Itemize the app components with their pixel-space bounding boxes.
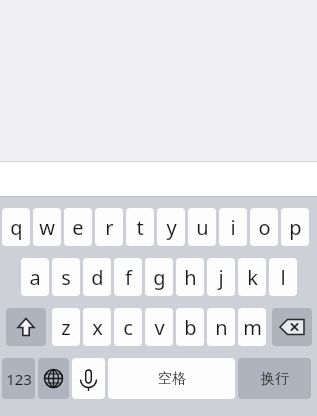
button[interactable]: t — [126, 208, 154, 246]
staticText: z — [61, 314, 71, 341]
staticText: d — [91, 264, 104, 291]
staticText: 换行 — [261, 370, 289, 388]
staticText: s — [61, 264, 71, 291]
button[interactable]: u — [188, 208, 216, 246]
staticText: f — [125, 264, 132, 291]
staticText: u — [196, 214, 209, 241]
button[interactable]: q — [2, 208, 30, 246]
button[interactable]: z — [52, 308, 80, 346]
staticText: k — [247, 264, 258, 291]
button[interactable]: o — [250, 208, 278, 246]
staticText: 123 — [6, 369, 32, 389]
button[interactable]: b — [176, 308, 204, 346]
staticText: y — [166, 214, 177, 241]
staticText: b — [184, 314, 197, 341]
staticText: j — [218, 264, 224, 291]
button[interactable]: Backspace — [272, 308, 312, 346]
button[interactable]: 123 — [2, 358, 35, 399]
button[interactable]: y — [157, 208, 185, 246]
button[interactable]: r — [95, 208, 123, 246]
staticText: t — [136, 214, 144, 241]
staticText: x — [92, 314, 103, 341]
button[interactable]: h — [176, 258, 204, 296]
button[interactable]: d — [83, 258, 111, 296]
button[interactable]: l — [269, 258, 297, 296]
staticText: 空格 — [158, 370, 186, 388]
staticText: a — [29, 264, 41, 291]
staticText: w — [39, 214, 55, 241]
button[interactable]: j — [207, 258, 235, 296]
button[interactable]: 空格 — [108, 358, 235, 399]
staticText: v — [154, 314, 165, 341]
button[interactable]: g — [145, 258, 173, 296]
staticText: o — [258, 214, 271, 241]
staticText: m — [243, 314, 262, 341]
staticText: l — [280, 264, 286, 291]
button[interactable]: x — [83, 308, 111, 346]
staticText: i — [230, 214, 236, 241]
button[interactable]: s — [52, 258, 80, 296]
staticText: r — [105, 214, 114, 241]
staticText: h — [184, 264, 197, 291]
staticText: q — [10, 214, 23, 241]
staticText: p — [289, 214, 302, 241]
button[interactable]: v — [145, 308, 173, 346]
button[interactable]: c — [114, 308, 142, 346]
staticText: g — [153, 264, 166, 291]
button[interactable]: f — [114, 258, 142, 296]
button[interactable]: k — [238, 258, 266, 296]
staticText: n — [215, 314, 228, 341]
staticText: e — [72, 214, 84, 241]
button[interactable]: 换行 — [238, 358, 311, 399]
button[interactable]: i — [219, 208, 247, 246]
button[interactable]: Voice input — [72, 358, 105, 399]
button[interactable]: m — [238, 308, 266, 346]
button[interactable]: e — [64, 208, 92, 246]
button[interactable]: p — [281, 208, 309, 246]
button[interactable]: Shift — [6, 308, 46, 346]
button[interactable]: Change keyboard — [38, 358, 69, 399]
button[interactable]: w — [33, 208, 61, 246]
button[interactable]: n — [207, 308, 235, 346]
button[interactable]: a — [21, 258, 49, 296]
staticText: c — [123, 314, 133, 341]
